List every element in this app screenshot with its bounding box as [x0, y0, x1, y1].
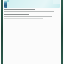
- button[interactable]: [4, 18, 60, 19]
- button[interactable]: [4, 14, 60, 17]
- button[interactable]: Featured image: [4, 0, 60, 8]
- button[interactable]: Side panel: [61, 0, 63, 64]
- button[interactable]: Navigation rail: [1, 0, 3, 64]
- button[interactable]: [4, 9, 60, 12]
